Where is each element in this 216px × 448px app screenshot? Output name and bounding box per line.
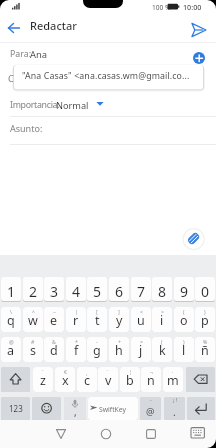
button[interactable]: ¸ [77,367,97,392]
button[interactable] [138,420,164,448]
staticText: b [126,372,134,389]
button[interactable]: ] [109,307,129,332]
staticText: Importancia: [10,99,60,111]
button[interactable]: & [44,337,64,362]
staticText: n [147,372,155,389]
staticText: Para: [10,48,32,60]
button[interactable]: ) [174,337,194,362]
button[interactable]: 2 [23,277,43,301]
staticText: 123 [9,403,23,414]
button[interactable] [1,367,30,392]
button[interactable]: € [55,367,75,392]
staticText: ¸ [86,368,88,375]
button[interactable]: 3 [44,277,64,301]
button[interactable] [188,423,208,445]
button[interactable]: ¬ [141,367,161,392]
button[interactable]: ~ [44,307,64,332]
button[interactable] [183,228,204,249]
button[interactable]: ` [33,367,53,392]
button[interactable]: % [195,337,215,362]
staticText: ( [183,308,185,315]
staticText: y [116,312,123,329]
staticText: + [118,338,121,345]
staticText: 9 [180,282,189,301]
button[interactable]: < [131,307,151,332]
staticText: l [182,342,186,359]
staticText: ) [183,338,185,345]
staticText: j [139,342,143,359]
staticText: * [75,338,78,345]
staticText: c [84,372,91,389]
staticText: z [40,372,46,389]
staticText: , [74,405,77,419]
staticText: < [140,308,143,315]
button[interactable]: = [131,337,151,362]
button[interactable] [186,367,215,392]
staticText: m [167,372,179,389]
staticText: ` [42,368,44,375]
staticText: - [150,397,152,404]
staticText: % [203,338,208,345]
button[interactable] [4,18,24,38]
staticText: 5 [93,282,102,301]
staticText: x [62,372,69,389]
staticText: ~ [53,308,56,315]
staticText: > [161,308,164,315]
staticText: Redactar [30,18,77,33]
staticText: s [30,342,36,359]
button[interactable] [93,420,119,448]
staticText: 100 % [152,3,171,12]
button[interactable]: 7 [131,277,151,301]
button[interactable] [0,117,216,144]
staticText: 2 [29,282,38,301]
button[interactable]: ( [174,307,194,332]
button[interactable]: ¨ [98,367,118,392]
button[interactable]: - [87,337,107,362]
button[interactable]: SwiftKey [88,397,138,420]
button[interactable]: ) [195,307,215,332]
button[interactable] [193,52,205,64]
button[interactable]: \ [1,307,21,332]
button[interactable]: 0 [195,277,215,301]
staticText: ) [204,308,206,315]
staticText: [ [96,308,98,315]
button[interactable]: 6 [109,277,129,301]
button[interactable]: 123 [1,397,30,420]
button[interactable]: 1 [1,277,21,301]
button[interactable]: ¦ [120,367,140,392]
button[interactable]: ¡ ! [164,397,185,420]
button[interactable]: 9 [174,277,194,301]
button[interactable] [0,44,216,65]
button[interactable] [48,420,74,448]
button[interactable]: , [64,397,86,420]
staticText: 0 [201,282,210,301]
staticText: \ [10,308,12,315]
button[interactable] [187,397,215,420]
button[interactable] [0,93,216,115]
button[interactable]: ^ [23,307,43,332]
button[interactable]: 8 [152,277,172,301]
button[interactable]: · [163,367,183,392]
button[interactable]: ( [152,337,172,362]
button[interactable]: > [152,307,172,332]
staticText: f [74,342,79,359]
staticText: d [50,342,58,359]
button[interactable]: # [23,337,43,362]
button[interactable]: - [140,397,161,420]
staticText: v [105,372,112,389]
staticText: ] [118,308,120,315]
button[interactable]: | [66,307,86,332]
staticText: ¦ [129,368,132,375]
button[interactable]: @ [1,337,21,362]
button[interactable] [32,397,61,420]
button[interactable]: 5 [87,277,107,301]
button[interactable]: * [66,337,86,362]
button[interactable]: "Ana Casas" <ana.casas.wm@gmail.co... [14,65,203,89]
staticText: k [159,342,166,359]
button[interactable]: 4 [66,277,86,301]
staticText: 10:00 [183,2,202,12]
button[interactable]: + [109,337,129,362]
staticText: i [160,312,164,329]
button[interactable]: [ [87,307,107,332]
button[interactable] [189,20,209,40]
